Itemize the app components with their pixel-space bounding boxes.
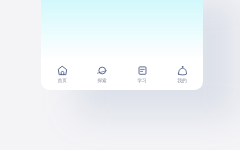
staticText: 学习 [137,78,147,84]
button[interactable]: 学习 [122,66,162,88]
staticText: 我的 [177,78,187,84]
staticText: 探索 [97,78,107,84]
button[interactable]: 首页 [42,66,82,88]
button[interactable]: 探索 [82,66,122,88]
staticText: 首页 [57,78,67,84]
button[interactable]: 我的 [162,66,202,88]
